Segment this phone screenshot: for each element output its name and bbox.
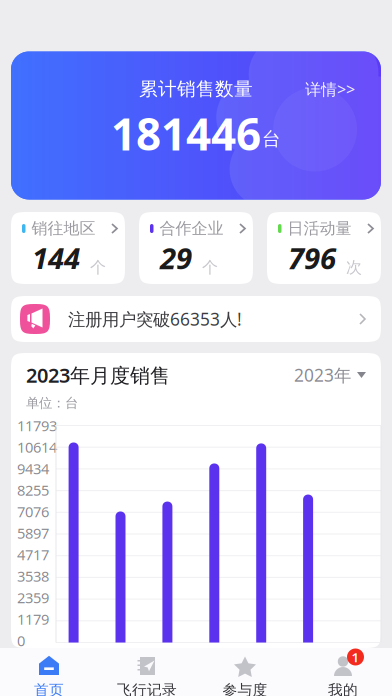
staticText: 合作企业: [159, 219, 223, 238]
staticText: 5897: [17, 523, 49, 543]
button[interactable]: 合作企业: [139, 212, 253, 284]
staticText: 参与度: [222, 681, 267, 696]
staticText: 1: [351, 648, 359, 666]
staticText: 8255: [17, 480, 49, 500]
staticText: 7076: [17, 502, 49, 521]
staticText: 796: [288, 238, 336, 277]
staticText: 2023年月度销售: [26, 362, 170, 388]
staticText: 0: [17, 631, 25, 650]
button[interactable]: 2023年: [294, 363, 366, 386]
button[interactable]: 首页: [0, 648, 98, 696]
staticText: 1179: [17, 609, 49, 629]
button[interactable]: 详情>>: [305, 78, 355, 99]
staticText: 日活动量: [287, 219, 351, 238]
button[interactable]: 日活动量: [267, 212, 381, 284]
button[interactable]: 飞行记录: [98, 648, 196, 696]
button[interactable]: 参与度: [196, 648, 294, 696]
staticText: 2023年: [294, 363, 351, 386]
staticText: 飞行记录: [117, 681, 177, 696]
button[interactable]: 销往地区: [11, 212, 125, 284]
staticText: 144: [32, 238, 80, 277]
staticText: 详情>>: [305, 78, 355, 99]
staticText: 累计销售数量: [139, 77, 253, 100]
staticText: 3538: [17, 566, 49, 586]
staticText: 注册用户突破66353人!: [68, 307, 242, 330]
staticText: 个: [90, 258, 106, 277]
button[interactable]: 我的: [294, 648, 392, 696]
staticText: 2359: [17, 588, 49, 607]
staticText: 我的: [328, 681, 358, 696]
staticText: 次: [346, 258, 362, 277]
button[interactable]: 注册用户突破66353人!: [11, 296, 381, 342]
staticText: 台: [262, 127, 281, 150]
staticText: 4717: [17, 545, 49, 564]
staticText: 181446: [111, 104, 261, 163]
staticText: 销往地区: [31, 219, 95, 238]
staticText: 9434: [17, 459, 49, 478]
staticText: 11793: [17, 416, 57, 435]
staticText: 单位：台: [26, 395, 78, 411]
staticText: 个: [202, 258, 218, 277]
staticText: 首页: [34, 681, 64, 696]
staticText: 29: [160, 238, 192, 277]
staticText: 10614: [17, 437, 57, 457]
